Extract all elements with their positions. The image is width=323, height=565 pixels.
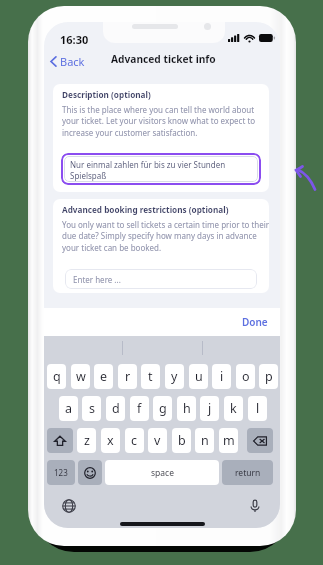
button[interactable]: n <box>195 428 214 453</box>
button[interactable]: return <box>222 460 273 485</box>
button[interactable]: Dictate <box>243 494 267 518</box>
staticText: b <box>178 432 186 449</box>
staticText: x <box>107 432 114 449</box>
staticText: f <box>137 400 142 417</box>
button[interactable]: Change keyboard <box>57 494 81 518</box>
staticText: a <box>65 400 73 417</box>
button[interactable]: p <box>259 364 278 389</box>
button[interactable]: i <box>212 364 231 389</box>
staticText: s <box>89 400 95 417</box>
staticText: i <box>220 368 224 385</box>
staticText: Description (optional) <box>62 89 151 100</box>
staticText: Advanced booking restrictions (optional) <box>62 204 229 215</box>
button[interactable]: f <box>130 396 149 421</box>
button[interactable]: Nur einmal zahlen für bis zu vier Stunde… <box>61 153 261 185</box>
staticText: e <box>100 368 108 385</box>
staticText: Advanced ticket info <box>111 52 216 66</box>
button[interactable]: h <box>177 396 196 421</box>
button[interactable]: s <box>82 396 101 421</box>
staticText: k <box>230 400 237 417</box>
button[interactable]: e <box>94 364 113 389</box>
button[interactable]: o <box>236 364 255 389</box>
button[interactable]: Shift <box>47 428 73 453</box>
staticText: q <box>53 368 61 385</box>
staticText: y <box>171 368 178 385</box>
button[interactable]: d <box>106 396 125 421</box>
button[interactable]: Backspace <box>247 428 273 453</box>
button[interactable]: b <box>172 428 191 453</box>
button[interactable]: z <box>77 428 96 453</box>
staticText: Back <box>60 54 85 69</box>
button[interactable]: 123 <box>47 460 75 485</box>
staticText: p <box>265 368 273 385</box>
staticText: return <box>235 467 261 479</box>
staticText: Nur einmal zahlen für bis zu vier Stunde… <box>70 159 242 181</box>
button[interactable]: a <box>59 396 78 421</box>
button[interactable]: y <box>165 364 184 389</box>
button[interactable]: g <box>153 396 172 421</box>
button[interactable]: v <box>148 428 167 453</box>
staticText: You only want to sell tickets a certain … <box>62 219 269 254</box>
staticText: t <box>148 368 153 385</box>
button[interactable]: l <box>248 396 267 421</box>
staticText: 123 <box>54 467 68 478</box>
staticText: c <box>131 432 138 449</box>
staticText: This is the place where you can tell the… <box>62 104 264 139</box>
button[interactable]: j <box>200 396 219 421</box>
staticText: g <box>159 400 167 417</box>
button[interactable]: u <box>189 364 208 389</box>
staticText: m <box>223 432 235 449</box>
button[interactable]: r <box>118 364 137 389</box>
staticText: w <box>76 368 86 385</box>
button[interactable]: space <box>105 460 219 485</box>
staticText: n <box>201 432 209 449</box>
staticText: j <box>208 400 212 417</box>
staticText: l <box>256 400 260 417</box>
staticText: 16:30 <box>60 32 89 47</box>
button[interactable]: Done <box>230 309 280 335</box>
staticText: z <box>84 432 90 449</box>
button[interactable]: k <box>224 396 243 421</box>
staticText: v <box>154 432 161 449</box>
button[interactable]: w <box>71 364 90 389</box>
button[interactable]: Back <box>46 51 89 72</box>
button[interactable]: m <box>219 428 238 453</box>
button[interactable]: c <box>125 428 144 453</box>
staticText: space <box>151 467 174 479</box>
staticText: u <box>195 368 203 385</box>
staticText: r <box>125 368 131 385</box>
button[interactable]: Emoji <box>78 460 102 485</box>
staticText: Enter here ... <box>73 274 121 285</box>
button[interactable]: x <box>101 428 120 453</box>
staticText: o <box>242 368 250 385</box>
button[interactable]: q <box>47 364 66 389</box>
staticText: h <box>183 400 191 417</box>
staticText: d <box>112 400 120 417</box>
button[interactable]: t <box>141 364 160 389</box>
button[interactable]: Enter here ... <box>65 269 257 289</box>
